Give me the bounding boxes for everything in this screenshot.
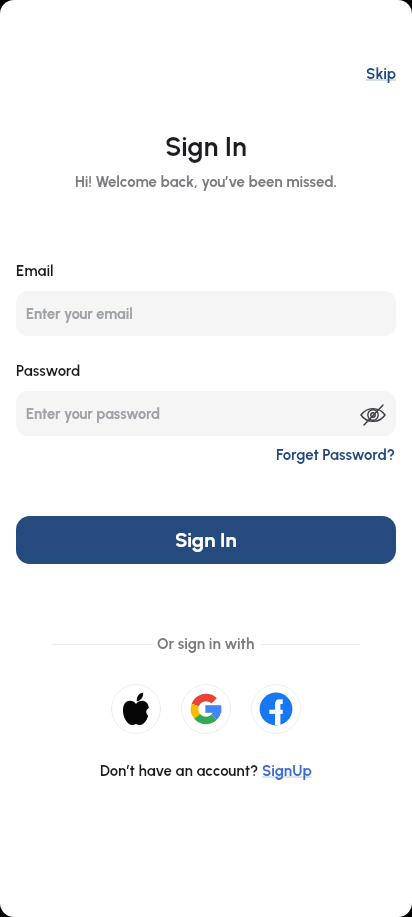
button[interactable]: Enter your email [16, 291, 396, 336]
staticText: Forget Password? [276, 446, 396, 464]
button[interactable] [111, 684, 161, 734]
staticText: Email [16, 262, 54, 280]
staticText: Don’t have an account? [100, 762, 262, 780]
staticText: Sign In [165, 131, 247, 163]
staticText: Or sign in with [157, 635, 255, 653]
staticText: Enter your email [26, 305, 133, 322]
staticText: Skip [366, 65, 396, 83]
staticText: SignUp [262, 762, 312, 780]
staticText: Password [16, 362, 81, 380]
button[interactable]: Sign In [16, 516, 396, 564]
staticText: Hi! Welcome back, you’ve been missed. [75, 173, 337, 191]
button[interactable]: SignUp [262, 762, 312, 780]
staticText: Enter your password [26, 405, 160, 422]
staticText: Sign In [175, 528, 237, 552]
button[interactable] [181, 684, 231, 734]
button[interactable]: Skip [366, 65, 396, 83]
button[interactable] [251, 684, 301, 734]
button[interactable]: Forget Password? [276, 446, 396, 464]
button[interactable]: Enter your password [16, 391, 396, 436]
